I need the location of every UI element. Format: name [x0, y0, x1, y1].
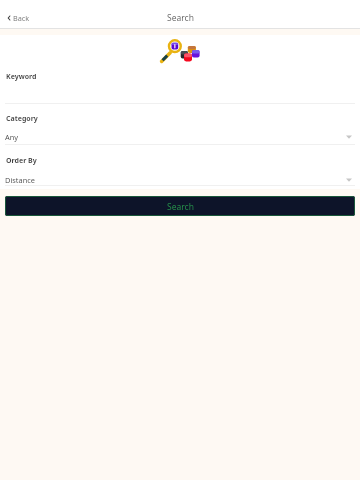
staticText: Any [5, 132, 19, 142]
staticText: Order By [6, 156, 37, 166]
staticText: Keyword [6, 72, 37, 82]
button[interactable]: Category: Any [0, 127, 360, 144]
staticText: Search [167, 201, 194, 213]
staticText: Distance [5, 175, 35, 185]
staticText: Category [6, 114, 38, 124]
button[interactable]: Keyword input [0, 68, 360, 103]
button[interactable]: Order By: Distance [0, 170, 360, 187]
staticText: Back [13, 13, 30, 23]
button[interactable]: Back [8, 13, 30, 23]
other: Search illustration [156, 37, 204, 65]
button[interactable]: Search [5, 196, 355, 216]
staticText: Search [167, 12, 194, 24]
